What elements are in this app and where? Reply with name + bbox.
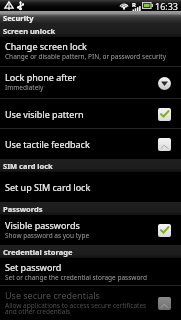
button[interactable]: Use secure credentials	[0, 286, 181, 320]
button[interactable]: Enabled	[158, 108, 171, 121]
staticText: Use visible pattern	[5, 108, 84, 120]
button[interactable]: Set password	[0, 258, 181, 286]
staticText: Set or change the credential storage pas…	[5, 273, 147, 282]
button[interactable]: Disabled	[158, 138, 171, 151]
button[interactable]: Use visible pattern	[0, 99, 181, 129]
staticText: Passwords	[3, 204, 43, 214]
button[interactable]: Lock phone after	[0, 67, 181, 99]
staticText: Set up SIM card lock	[5, 181, 91, 193]
button[interactable]: Use tactile feedback	[0, 129, 181, 159]
button[interactable]: Change lock delay	[158, 77, 171, 90]
staticText: Use secure credentials	[5, 289, 100, 301]
button[interactable]: Disabled	[158, 297, 171, 310]
staticText: Credential storage	[3, 247, 73, 257]
staticText: Immediately	[5, 83, 44, 92]
button[interactable]: Enabled	[158, 224, 171, 237]
staticText: Visible passwords	[5, 219, 80, 231]
staticText: Set password	[5, 261, 62, 273]
staticText: SIM card lock	[3, 161, 53, 171]
staticText: Change or disable pattern, PIN, or passw…	[5, 52, 166, 61]
staticText: Allow applications to access secure cert…	[5, 301, 154, 316]
button[interactable]: Visible passwords	[0, 215, 181, 245]
staticText: Screen unlock	[3, 26, 56, 36]
staticText: R	[132, 1, 136, 9]
button[interactable]: Set up SIM card lock	[0, 172, 181, 202]
staticText: Security	[3, 13, 34, 23]
button[interactable]: Change screen lock	[0, 37, 181, 67]
staticText: Change screen lock	[5, 40, 87, 52]
staticText: Show password as you type	[5, 231, 90, 240]
staticText: Use tactile feedback	[5, 138, 90, 150]
staticText: 16:33	[155, 0, 179, 11]
staticText: Lock phone after	[5, 71, 77, 83]
